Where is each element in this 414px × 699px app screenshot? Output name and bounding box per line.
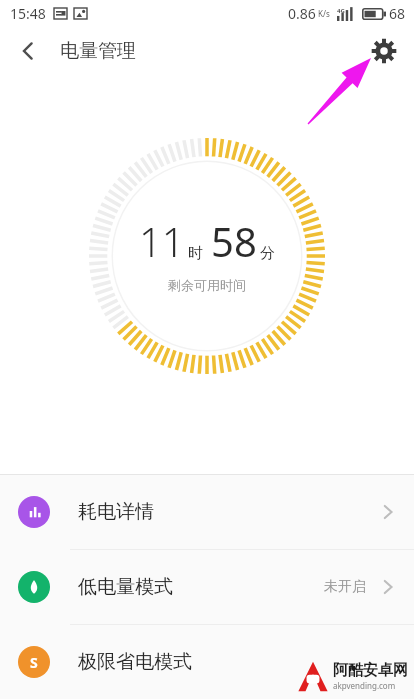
staticText: 11 bbox=[139, 214, 185, 268]
button[interactable]: S bbox=[0, 625, 414, 699]
staticText: 电量管理 bbox=[60, 39, 136, 63]
staticText: 分 bbox=[260, 244, 275, 263]
staticText: 4G bbox=[337, 7, 345, 15]
staticText: 未开启 bbox=[324, 578, 366, 596]
staticText: S bbox=[30, 653, 38, 672]
staticText: 时 bbox=[188, 244, 203, 263]
staticText: K/s bbox=[318, 8, 330, 19]
button[interactable]: 低电量模式 bbox=[0, 550, 414, 625]
button[interactable]: Back bbox=[6, 29, 50, 73]
staticText: 耗电详情 bbox=[78, 500, 154, 524]
staticText: 低电量模式 bbox=[78, 575, 173, 599]
staticText: 极限省电模式 bbox=[78, 650, 192, 674]
staticText: 15:48 bbox=[10, 4, 46, 23]
staticText: 剩余可用时间 bbox=[168, 277, 246, 293]
staticText: 68 bbox=[389, 4, 406, 23]
button[interactable]: Settings bbox=[362, 29, 406, 73]
staticText: 阿酷安卓网 bbox=[333, 661, 408, 680]
staticText: 0.86 bbox=[288, 4, 316, 23]
button[interactable]: 耗电详情 bbox=[0, 475, 414, 550]
staticText: akpvending.com bbox=[333, 680, 396, 691]
staticText: 58 bbox=[211, 214, 257, 268]
